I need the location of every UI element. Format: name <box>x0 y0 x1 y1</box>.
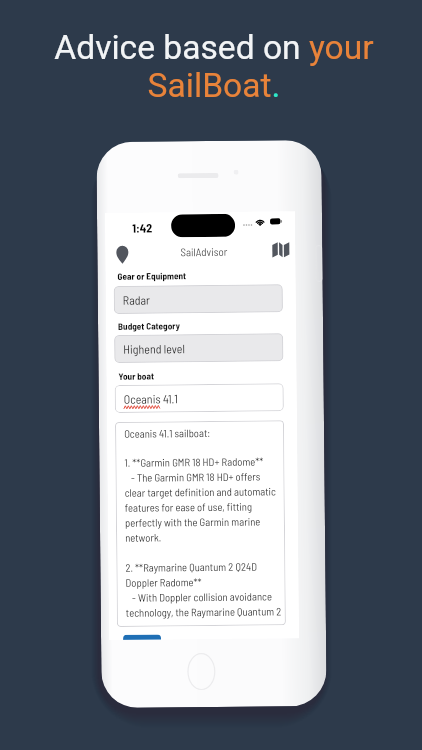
staticText: Gear or Equipment <box>117 270 187 282</box>
staticText: 1:42 <box>132 221 153 235</box>
other: Power button <box>315 245 323 282</box>
staticText: SailAdvisor <box>180 245 228 258</box>
staticText: Oceanis 41.1 sailboat: 1. **Garmin GMR 1… <box>124 425 284 620</box>
button[interactable]: Submit <box>123 634 161 640</box>
staticText: Advice based on your SailBoat. <box>54 28 374 105</box>
staticText: Radar <box>123 293 151 307</box>
button[interactable]: Highend level <box>114 333 283 363</box>
staticText: Budget Category <box>118 320 180 332</box>
staticText: Your boat <box>118 370 155 382</box>
button[interactable]: Map <box>271 241 289 258</box>
button[interactable]: Oceanis 41.1 sailboat: 1. **Garmin GMR 1… <box>115 420 286 627</box>
staticText: Oceanis 41.1 <box>124 391 179 406</box>
button[interactable]: Location <box>116 243 128 267</box>
button[interactable]: Radar <box>114 284 283 314</box>
staticText: Highend level <box>123 341 185 356</box>
button[interactable]: Oceanis 41.1 <box>115 383 284 413</box>
